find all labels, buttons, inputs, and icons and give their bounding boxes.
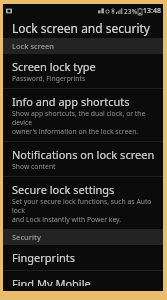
staticText: Secure lock settings <box>12 182 115 197</box>
staticText: Info and app shortcuts <box>12 94 130 109</box>
button[interactable]: Find My Mobile <box>3 271 163 291</box>
staticText: Security <box>12 232 41 242</box>
button[interactable]: Secure lock settings <box>3 177 163 229</box>
button[interactable]: Fingerprints <box>3 245 163 270</box>
staticText: 23% <box>124 7 137 16</box>
staticText: Fingerprints <box>12 250 76 265</box>
staticText: Show content <box>12 162 56 171</box>
staticText: Set your secure lock functions, such as … <box>12 197 155 224</box>
staticText: Show app shortcuts, the dual clock, or t… <box>12 109 155 136</box>
staticText: Password, Fingerprints <box>12 74 86 83</box>
staticText: Notifications on lock screen <box>12 147 155 162</box>
staticText: Find My Mobile <box>12 276 91 286</box>
button[interactable]: Notifications on lock screen <box>3 142 163 176</box>
button[interactable]: Info and app shortcuts <box>3 89 163 141</box>
staticText: Lock screen <box>12 41 55 51</box>
button[interactable]: Screen lock type <box>3 54 163 88</box>
staticText: Screen lock type <box>12 59 96 74</box>
staticText: 13:48 <box>143 6 161 16</box>
staticText: Lock screen and security <box>12 20 150 36</box>
